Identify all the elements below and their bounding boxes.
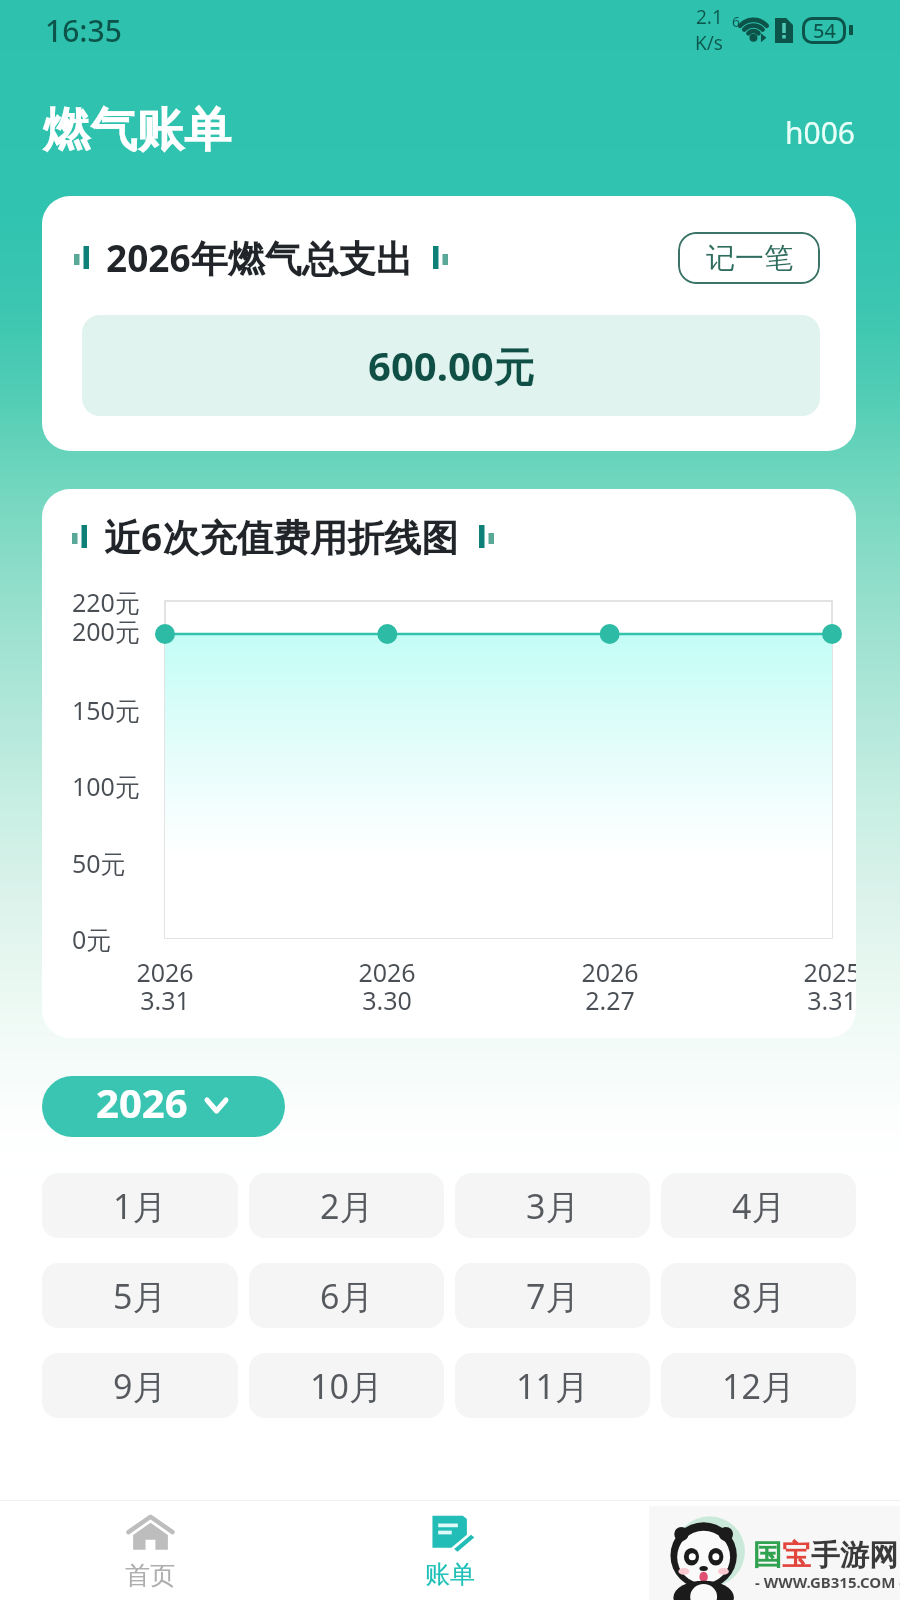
button[interactable]: 2月 xyxy=(249,1173,444,1238)
button[interactable]: 6月 xyxy=(249,1263,444,1328)
button[interactable]: 1月 xyxy=(42,1173,238,1238)
staticText: - WWW.GB315.COM - xyxy=(755,1572,900,1592)
staticText: 12月 xyxy=(722,1363,795,1409)
button[interactable]: 3月 xyxy=(455,1173,650,1238)
staticText: 4月 xyxy=(732,1183,786,1229)
staticText: 150元 xyxy=(72,693,140,727)
button[interactable]: 记一笔 xyxy=(678,232,820,284)
staticText: 1月 xyxy=(113,1183,167,1229)
staticText: 账单 xyxy=(425,1559,475,1590)
button[interactable]: 11月 xyxy=(455,1353,650,1418)
staticText: 200元 xyxy=(72,614,140,648)
staticText: 220元 xyxy=(72,585,140,619)
staticText: 手游网 xyxy=(811,1537,898,1574)
button[interactable]: 12月 xyxy=(661,1353,856,1418)
staticText: 50元 xyxy=(72,846,126,880)
staticText: 2月 xyxy=(320,1183,374,1229)
button[interactable]: 7月 xyxy=(455,1263,650,1328)
button[interactable]: 首页 xyxy=(0,1500,300,1600)
button[interactable]: 4月 xyxy=(661,1173,856,1238)
staticText: 0元 xyxy=(72,922,112,956)
staticText: 2026 xyxy=(96,1076,188,1129)
button[interactable]: 5月 xyxy=(42,1263,238,1328)
staticText: 9月 xyxy=(113,1363,167,1409)
staticText: 3月 xyxy=(526,1183,580,1229)
staticText: 100元 xyxy=(72,769,140,803)
staticText: 7月 xyxy=(526,1273,580,1319)
staticText: 首页 xyxy=(125,1560,175,1591)
staticText: 54 xyxy=(813,17,836,44)
staticText: 2025 3.31 xyxy=(772,955,856,1017)
staticText: 11月 xyxy=(516,1363,589,1409)
button[interactable]: 账单 xyxy=(300,1500,600,1600)
staticText: 国 xyxy=(753,1537,782,1574)
staticText: 2026 2.27 xyxy=(550,955,670,1017)
staticText: 8月 xyxy=(732,1273,786,1319)
staticText: 2.1 xyxy=(696,4,723,30)
button[interactable]: 9月 xyxy=(42,1353,238,1418)
staticText: 2026 3.31 xyxy=(105,955,225,1017)
button[interactable]: 10月 xyxy=(249,1353,444,1418)
staticText: 600.00元 xyxy=(368,338,534,393)
staticText: 燃气账单 xyxy=(43,101,231,160)
staticText: 5月 xyxy=(113,1273,167,1319)
staticText: K/s xyxy=(695,30,723,56)
staticText: 记一笔 xyxy=(706,240,793,277)
staticText: 16:35 xyxy=(45,10,122,51)
staticText: 2026年燃气总支出 xyxy=(106,232,413,283)
staticText: 6月 xyxy=(320,1273,374,1319)
staticText: 6 xyxy=(732,12,741,31)
staticText: 2026 3.30 xyxy=(327,955,447,1017)
staticText: 近6次充值费用折线图 xyxy=(104,511,459,562)
button[interactable]: 2026 xyxy=(42,1076,285,1137)
button[interactable]: 8月 xyxy=(661,1263,856,1328)
staticText: 宝 xyxy=(782,1537,811,1574)
staticText: h006 xyxy=(785,112,856,153)
staticText: 10月 xyxy=(310,1363,383,1409)
